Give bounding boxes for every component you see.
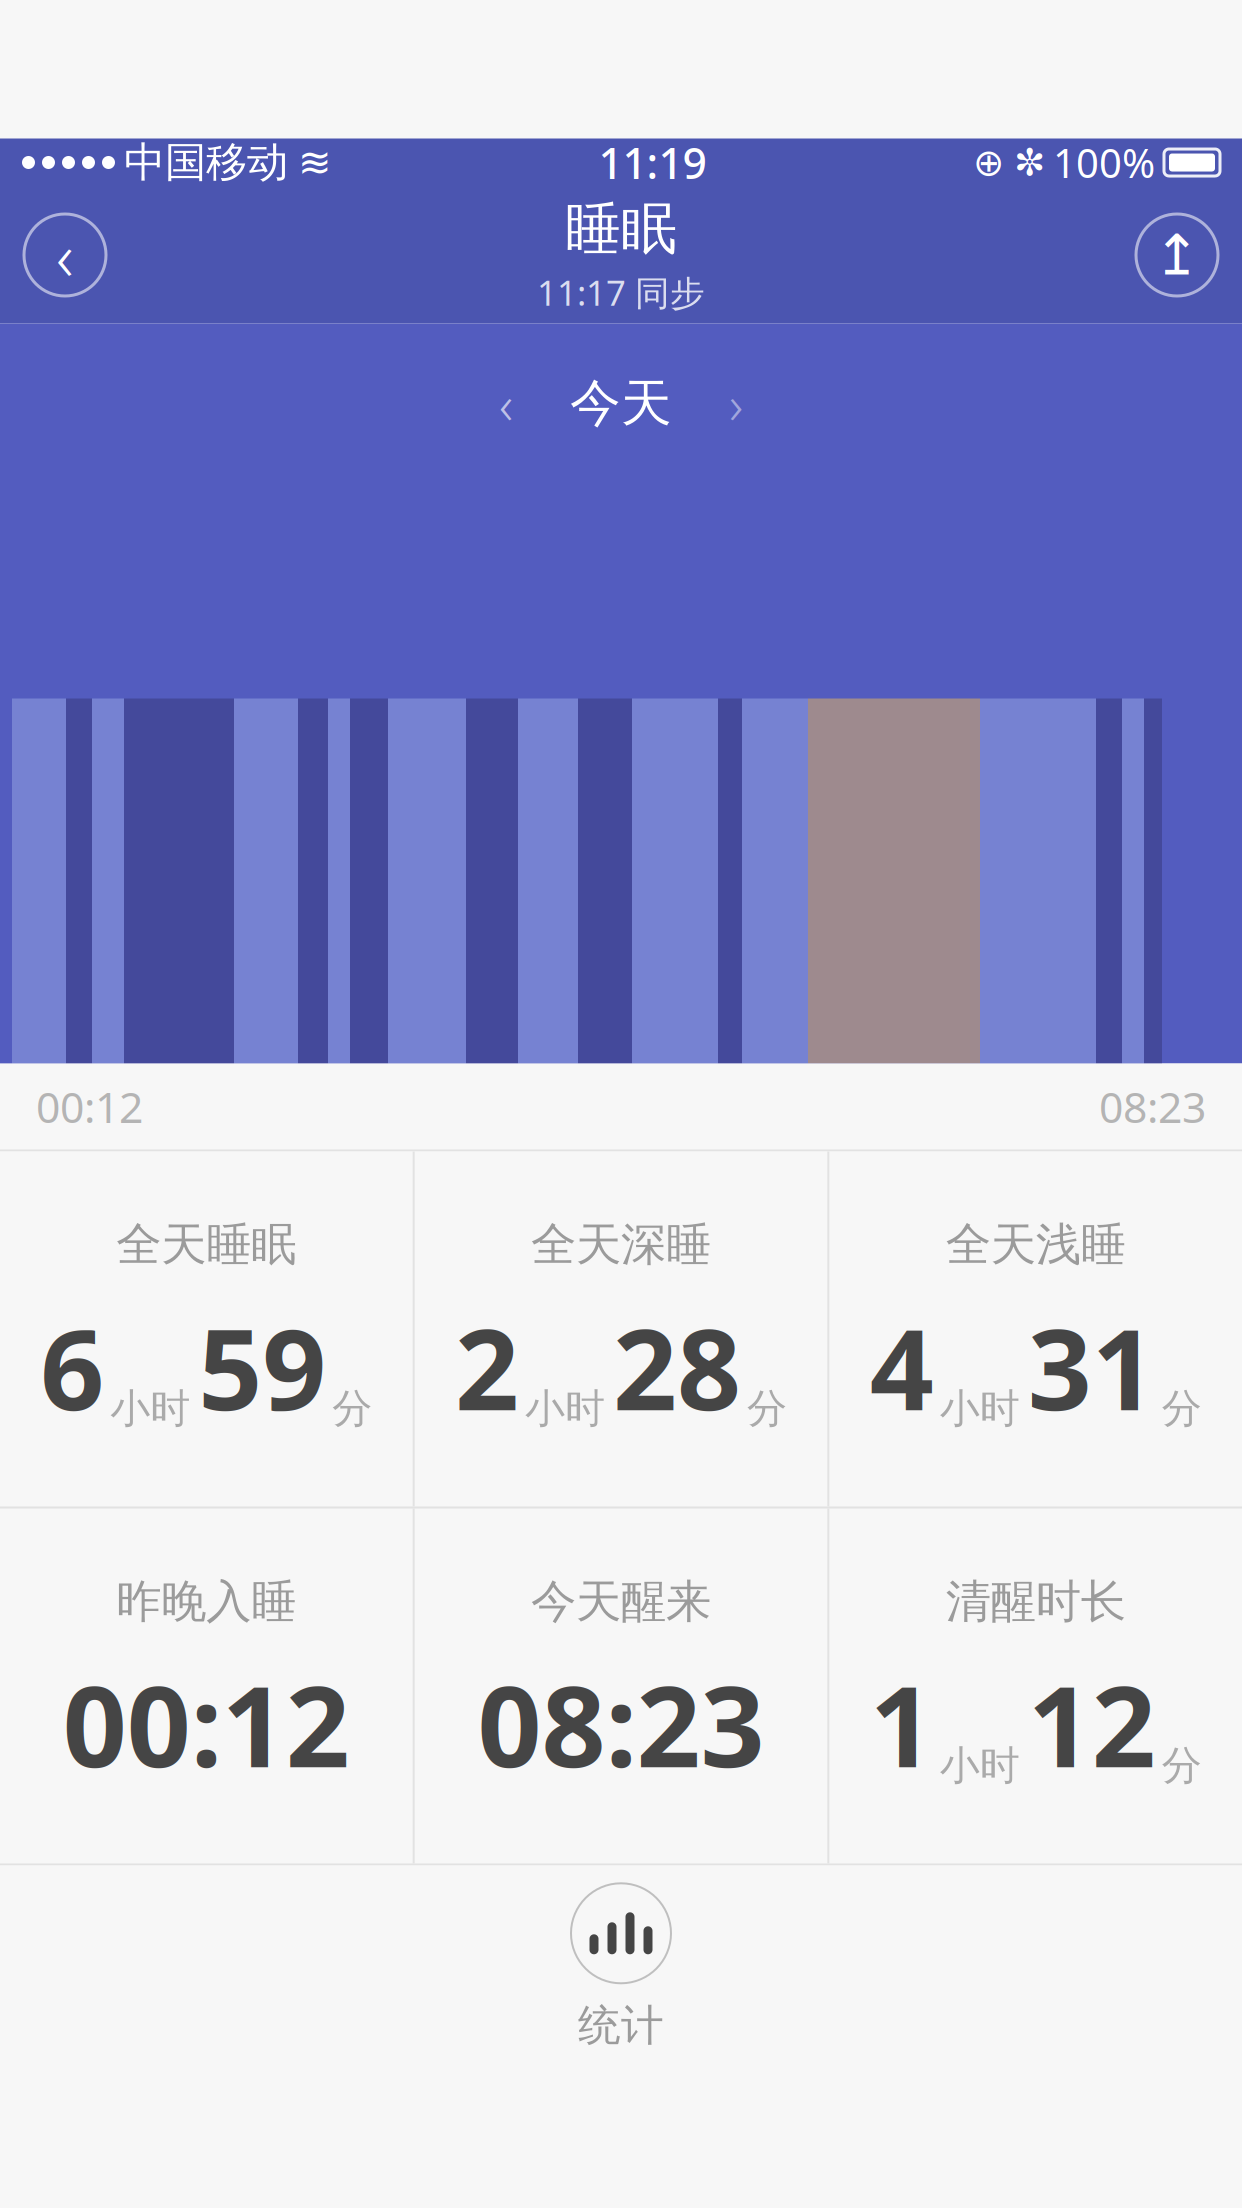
- staticText: 全天浅睡: [946, 1217, 1126, 1272]
- staticText: 全天睡眠: [116, 1217, 296, 1272]
- staticText: 6: [40, 1292, 104, 1441]
- staticText: 11:17 同步: [537, 269, 705, 315]
- staticText: ‹: [499, 368, 513, 439]
- staticText: 统计: [578, 1999, 664, 2052]
- button[interactable]: 统计: [0, 1883, 1242, 2052]
- button[interactable]: 返回: [24, 214, 106, 296]
- button[interactable]: 后一天: [696, 363, 776, 443]
- staticText: 小时: [940, 1741, 1020, 1790]
- staticText: ✼: [1014, 141, 1045, 184]
- staticText: 08:23: [1099, 1078, 1206, 1135]
- staticText: 分: [1162, 1384, 1202, 1433]
- staticText: 今天: [570, 372, 672, 435]
- staticText: 小时: [940, 1384, 1020, 1433]
- staticText: 31: [1028, 1292, 1156, 1441]
- staticText: 小时: [525, 1384, 605, 1433]
- staticText: 全天深睡: [531, 1217, 711, 1272]
- staticText: 清醒时长: [946, 1574, 1126, 1629]
- button[interactable]: 分享: [1136, 214, 1218, 296]
- button[interactable]: 前一天: [466, 363, 546, 443]
- staticText: 分: [332, 1384, 372, 1433]
- staticText: ↥: [1153, 223, 1200, 287]
- staticText: 1: [870, 1649, 934, 1798]
- staticText: 00:12: [36, 1078, 143, 1135]
- staticText: 28: [613, 1292, 741, 1441]
- staticText: 11:19: [598, 134, 706, 191]
- staticText: 小时: [110, 1384, 190, 1433]
- staticText: 59: [198, 1292, 326, 1441]
- staticText: 昨晚入睡: [116, 1574, 296, 1629]
- staticText: ›: [729, 368, 743, 439]
- staticText: 分: [747, 1384, 787, 1433]
- staticText: 100%: [1053, 136, 1155, 189]
- staticText: 中国移动: [124, 137, 288, 188]
- staticText: 分: [1162, 1741, 1202, 1790]
- staticText: 2: [455, 1292, 519, 1441]
- staticText: ⊕: [973, 141, 1004, 184]
- staticText: ≋: [298, 140, 332, 185]
- staticText: 12: [1028, 1649, 1156, 1798]
- staticText: 今天醒来: [531, 1574, 711, 1629]
- staticText: 08:23: [477, 1649, 764, 1798]
- staticText: 00:12: [63, 1649, 350, 1798]
- staticText: ‹: [56, 211, 74, 299]
- staticText: 睡眠: [565, 195, 677, 263]
- staticText: 4: [870, 1292, 934, 1441]
